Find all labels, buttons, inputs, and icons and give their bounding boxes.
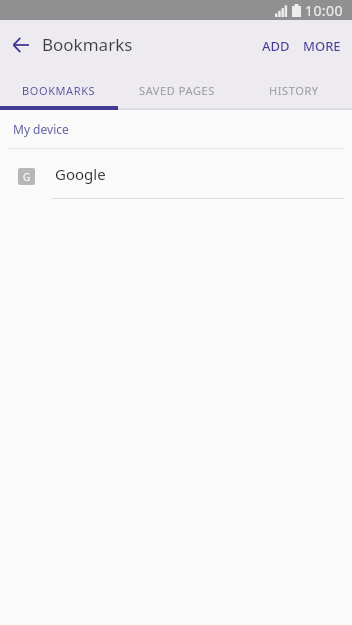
staticText: MORE	[303, 37, 341, 52]
staticText: 10:00	[305, 1, 343, 20]
button[interactable]: BOOKMARKS	[0, 66, 118, 110]
staticText: G	[23, 170, 31, 184]
staticText: HISTORY	[269, 83, 319, 98]
button[interactable]: G	[0, 149, 352, 198]
button[interactable]: SAVED PAGES	[118, 66, 235, 110]
button[interactable]: ADD	[254, 23, 295, 66]
button[interactable]: MORE	[295, 23, 352, 66]
button[interactable]: HISTORY	[235, 66, 352, 110]
staticText: ADD	[262, 37, 290, 52]
staticText: Bookmarks	[42, 33, 133, 56]
staticText: Google	[55, 164, 106, 184]
staticText: SAVED PAGES	[139, 83, 215, 98]
staticText: BOOKMARKS	[22, 83, 96, 98]
staticText: My device	[13, 121, 69, 137]
button[interactable]	[0, 23, 42, 66]
